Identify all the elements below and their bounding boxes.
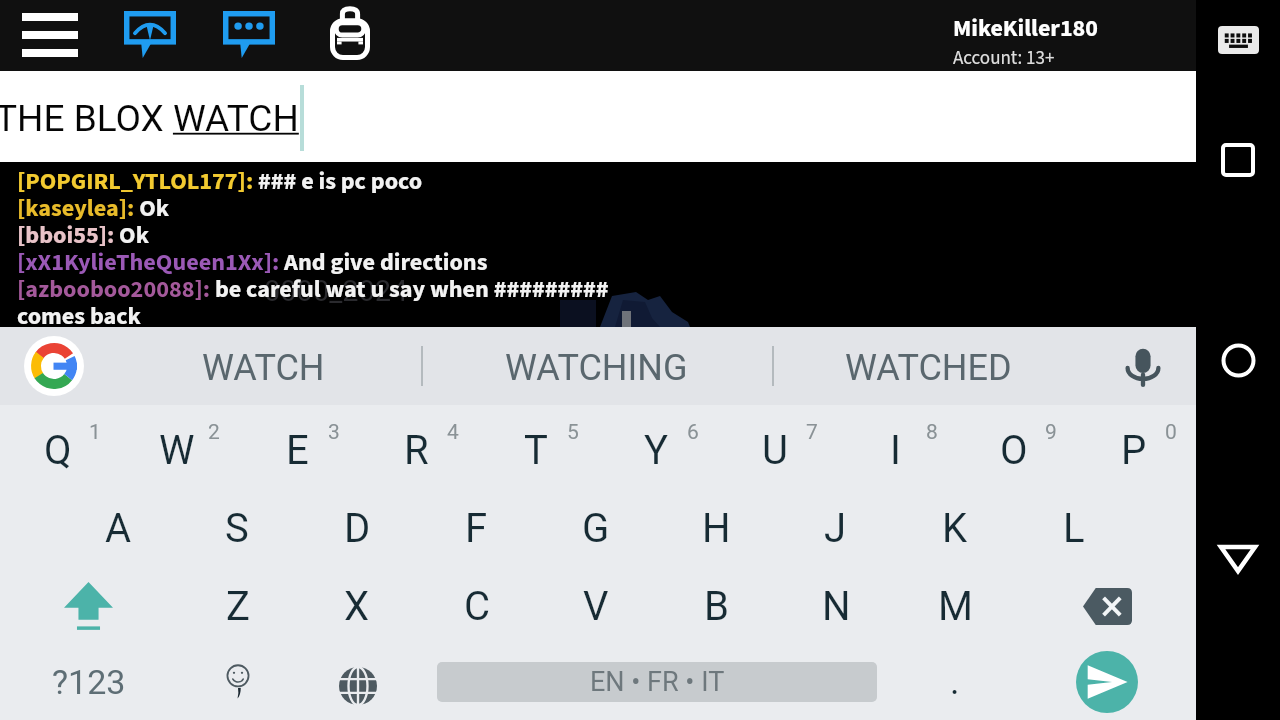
button[interactable]: T [476,411,596,489]
button[interactable]: Q [0,411,118,489]
button[interactable]: Send [1047,643,1167,720]
staticText: Account: 13+ [953,45,1055,72]
staticText: V [583,583,609,630]
staticText: 9 [1045,420,1057,445]
button[interactable]: I [835,411,955,489]
staticText: 0 [1165,420,1177,445]
staticText: EN • FR • IT [590,666,725,698]
staticText: 2 [208,420,220,445]
button[interactable]: Messages [223,11,275,58]
button[interactable]: E [237,411,357,489]
button[interactable]: WATCHED [788,329,1068,407]
staticText: WATCHED [845,347,1012,389]
button[interactable]: MikeKiller180 [953,11,1133,72]
staticText: A [105,505,132,552]
button[interactable]: Change language [298,643,418,720]
button[interactable]: U [715,411,835,489]
button[interactable]: WATCHING [456,329,736,407]
staticText: Z [226,583,250,630]
button[interactable]: Emoji [178,643,298,720]
staticText: 7 [806,420,818,445]
button[interactable]: . [895,643,1015,720]
staticText: 1 [89,420,101,445]
button[interactable]: Home [1221,343,1256,378]
button[interactable]: Back [1218,544,1258,574]
staticText: C [464,583,491,630]
staticText: M [938,583,973,630]
button[interactable]: P [1074,411,1194,489]
staticText: B [704,583,729,630]
staticText: MikeKiller180 [953,11,1098,45]
button[interactable]: C [417,567,537,645]
button[interactable]: N [776,567,896,645]
button[interactable]: K [895,489,1015,567]
staticText: P [1121,427,1147,474]
button[interactable]: Chat [124,11,176,58]
staticText: 0000_2024 [264,274,408,308]
staticText: T [524,427,548,474]
button[interactable]: Shift [29,567,149,645]
button[interactable]: X [297,567,417,645]
button[interactable]: Backpack [330,8,370,60]
button[interactable]: Recent apps [1221,143,1255,177]
staticText: X [344,583,370,630]
button[interactable]: Backspace [1047,567,1167,645]
staticText: Q [44,427,72,474]
button[interactable]: W [117,411,237,489]
button[interactable]: EN • FR • IT [437,643,877,720]
button[interactable]: J [775,489,895,567]
staticText: 3 [328,420,340,445]
button[interactable]: D [297,489,417,567]
button[interactable]: ?123 [24,643,154,720]
staticText: S [225,505,249,552]
button[interactable]: F [416,489,536,567]
button[interactable]: A [58,489,178,567]
staticText: E [286,427,309,474]
button[interactable]: Y [596,411,716,489]
staticText: 8 [926,420,938,445]
staticText: 5 [567,420,579,445]
button[interactable]: R [356,411,476,489]
button[interactable]: THE BLOX WATCH [0,71,1196,162]
button[interactable]: H [656,489,776,567]
staticText: J [824,505,847,552]
staticText: I [890,427,901,474]
button[interactable]: G [536,489,656,567]
staticText: K [942,505,968,552]
button[interactable]: WATCH [123,329,403,407]
staticText: N [822,583,851,630]
button[interactable]: B [656,567,776,645]
staticText: . [950,661,960,703]
staticText: F [465,505,488,552]
staticText: O [1000,427,1028,474]
staticText: [POPGIRL_YTLOL177]: ### e is pc poco [ka… [17,170,617,332]
button[interactable]: L [1014,489,1134,567]
button[interactable]: S [177,489,297,567]
staticText: ?123 [52,662,126,702]
staticText: 6 [687,420,699,445]
staticText: WATCHING [505,347,688,389]
button[interactable]: Hide keyboard [1218,26,1259,54]
button[interactable]: M [895,567,1015,645]
staticText: D [344,505,371,552]
staticText: THE BLOX WATCH [0,97,299,140]
button[interactable]: Google [24,336,84,396]
staticText: W [159,427,195,474]
staticText: G [582,505,610,552]
button[interactable]: Z [178,567,298,645]
button[interactable]: Menu [16,7,84,65]
staticText: L [1063,505,1085,552]
button[interactable]: [POPGIRL_YTLOL177]: ### e is pc poco [ka… [17,170,617,332]
staticText: Y [644,427,669,474]
staticText: 4 [447,420,459,445]
staticText: U [762,427,788,474]
staticText: H [702,505,731,552]
button[interactable]: Voice input [1116,339,1170,393]
staticText: WATCH [202,347,325,389]
staticText: R [404,427,429,474]
button[interactable]: V [536,567,656,645]
button[interactable]: O [954,411,1074,489]
